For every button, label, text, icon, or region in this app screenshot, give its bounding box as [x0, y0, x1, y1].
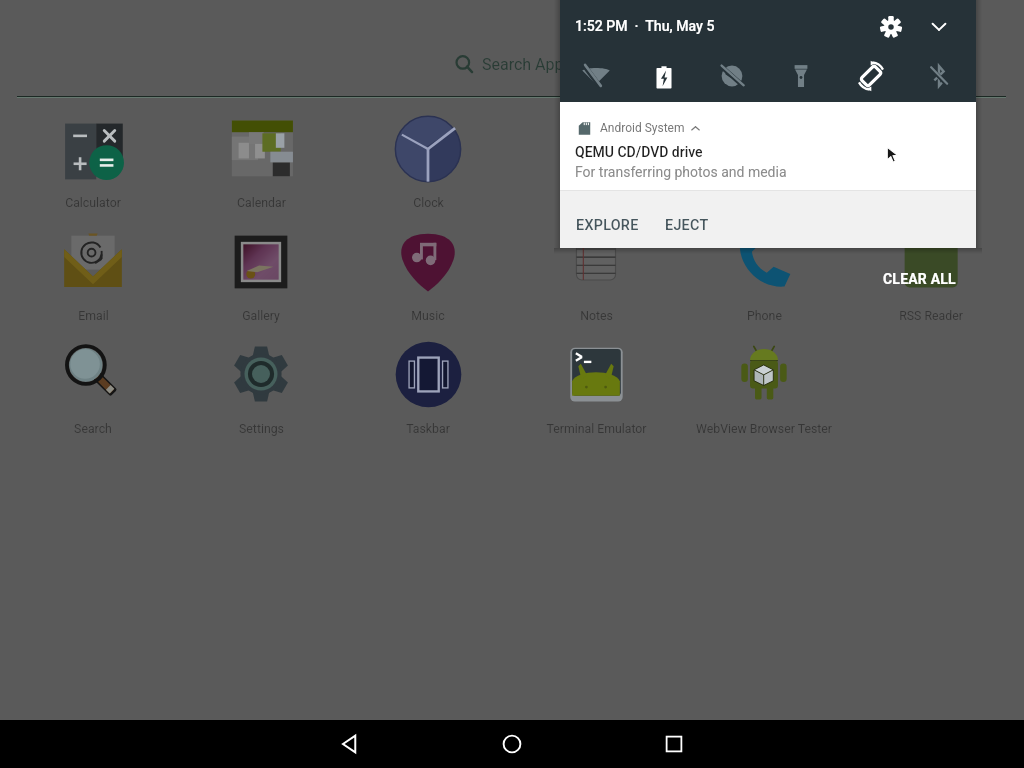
staticText: Calculator [65, 196, 121, 210]
button[interactable]: Home [452, 720, 572, 768]
button[interactable]: Wi-Fi off [576, 56, 616, 96]
staticText: Music [411, 309, 445, 323]
button[interactable]: Bluetooth off [919, 56, 959, 96]
button[interactable]: WebView Browser Tester [682, 332, 846, 436]
staticText: Terminal Emulator [546, 422, 647, 436]
button[interactable]: Android System [560, 102, 976, 190]
button[interactable]: Gallery [179, 220, 343, 324]
button[interactable]: Phone [682, 220, 846, 324]
button[interactable]: Music [346, 220, 510, 324]
button[interactable]: Settings [179, 332, 343, 436]
button[interactable]: Settings [875, 11, 907, 43]
button[interactable]: Collapse [923, 11, 955, 43]
staticText: Email [78, 309, 109, 323]
staticText: Taskbar [406, 422, 450, 436]
staticText: Gallery [242, 309, 280, 323]
staticText: Phone [747, 309, 782, 323]
button[interactable]: Flashlight [781, 56, 821, 96]
staticText: EJECT [665, 217, 709, 234]
staticText: For transferring photos and media [575, 164, 787, 180]
button[interactable]: Clock [346, 107, 510, 211]
staticText: Android System [600, 121, 685, 135]
button[interactable]: Notes [514, 220, 678, 324]
staticText: Clock [413, 196, 444, 210]
staticText: WebView Browser Tester [696, 422, 832, 436]
staticText: 1:52 PM · Thu, May 5 [575, 18, 715, 35]
staticText: Search [74, 422, 112, 436]
button[interactable]: Taskbar [346, 332, 510, 436]
staticText: Notes [580, 309, 613, 323]
staticText: RSS Reader [899, 309, 963, 323]
button[interactable]: Email [11, 220, 175, 324]
button[interactable]: Do not disturb [712, 56, 752, 96]
button[interactable]: EJECT [657, 209, 717, 242]
button[interactable]: Battery charging [644, 57, 684, 97]
button[interactable]: RSS Reader [849, 220, 1013, 324]
button[interactable]: CLEAR ALL [871, 261, 968, 297]
staticText: Settings [239, 422, 284, 436]
button[interactable]: Auto rotate [851, 56, 891, 96]
button[interactable]: Back [290, 720, 410, 768]
button[interactable]: Search [11, 332, 175, 436]
button[interactable]: Terminal Emulator [514, 332, 678, 436]
button[interactable]: EXPLORE [568, 209, 647, 242]
staticText: Calendar [237, 196, 286, 210]
staticText: QEMU CD/DVD drive [575, 144, 703, 160]
staticText: CLEAR ALL [883, 271, 956, 287]
button[interactable]: Calendar [179, 107, 343, 211]
staticText: Search Apps [482, 55, 572, 74]
button[interactable]: Recents [614, 720, 734, 768]
button[interactable]: Calculator [11, 107, 175, 211]
staticText: EXPLORE [576, 217, 639, 234]
button[interactable]: Search Apps [454, 54, 572, 75]
